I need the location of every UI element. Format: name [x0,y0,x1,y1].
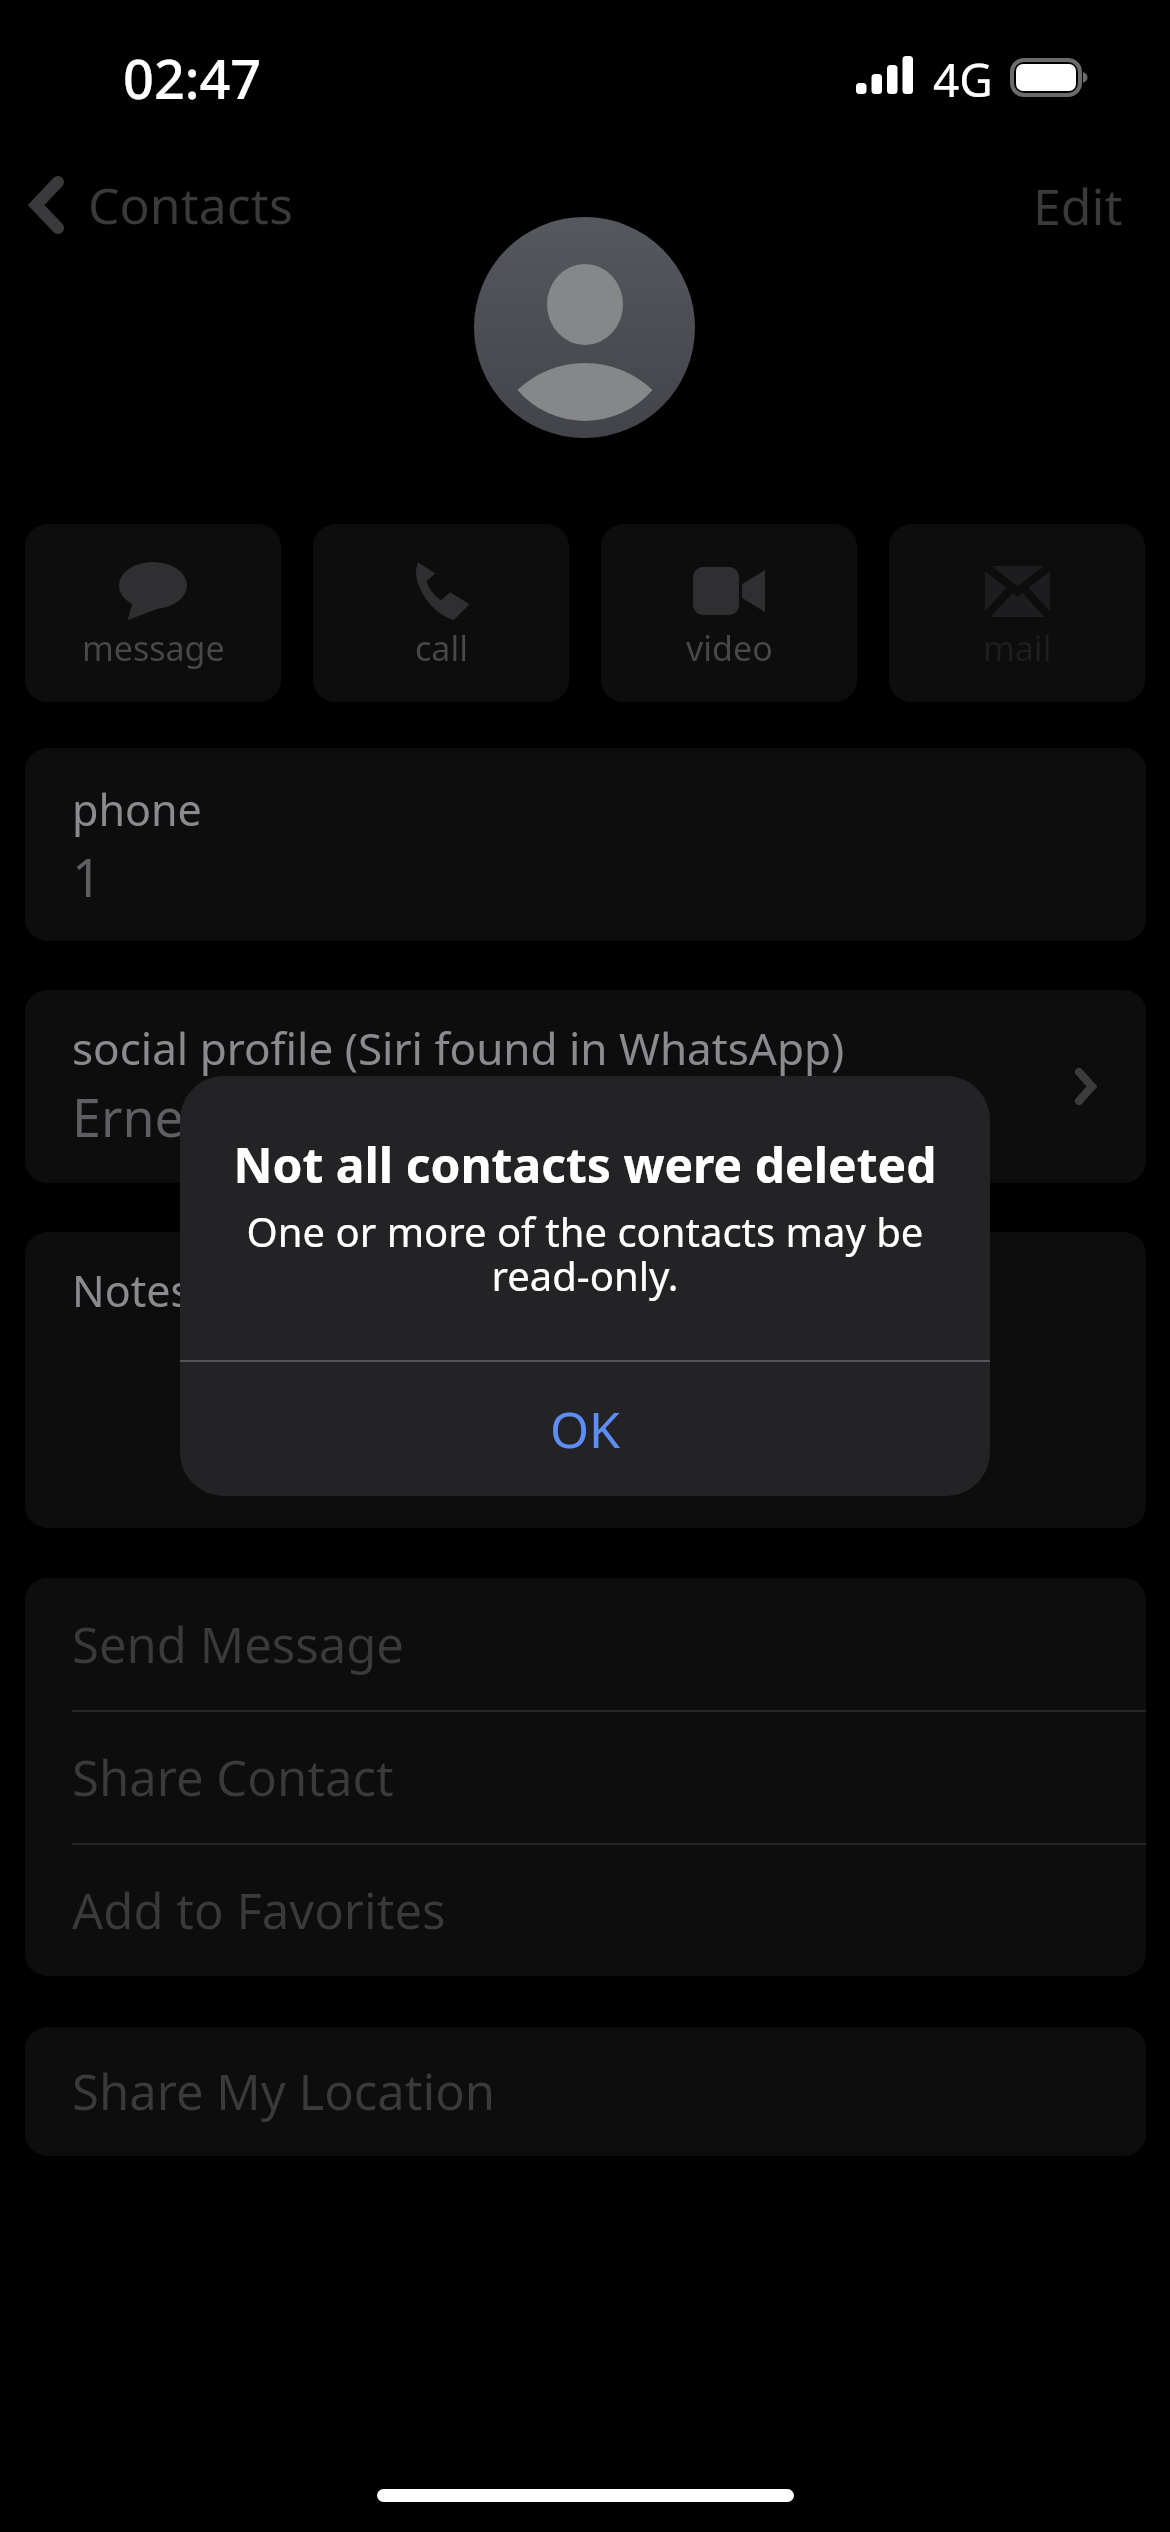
button[interactable]: Share My Location [25,2027,1146,2156]
button[interactable]: Share Contact [25,1712,1146,1843]
staticText: 02:47 [123,41,262,115]
staticText: Contacts [88,171,293,239]
button[interactable]: Notes [25,1232,1146,1528]
staticText: Edit [1033,172,1123,240]
button[interactable]: message [25,524,281,702]
button[interactable]: Add to Favorites [25,1845,1146,1976]
button[interactable]: video [601,524,857,702]
staticText: mail [983,625,1052,671]
staticText: Share My Location [72,2058,496,2125]
staticText: Ernest [72,1081,228,1152]
staticText: message [82,625,225,671]
staticText: call [415,625,468,671]
button[interactable]: OK [180,1362,990,1496]
staticText: Share Contact [72,1744,394,1811]
staticText: Not all contacts were deleted [180,1132,990,1197]
staticText: video [686,625,773,671]
staticText: social profile (Siri found in WhatsApp) [72,1018,845,1078]
button[interactable]: phone [25,748,1146,941]
staticText: OK [550,1395,620,1463]
staticText: 1 [72,841,102,912]
staticText: Add to Favorites [72,1877,446,1944]
button[interactable]: call [313,524,569,702]
button[interactable]: mail [889,524,1145,702]
staticText: One or more of the contacts may be read-… [180,1204,990,1302]
button[interactable]: Send Message [25,1578,1146,1710]
button[interactable]: Edit [1011,160,1145,252]
button[interactable]: social profile (Siri found in WhatsApp) [25,990,1146,1183]
staticText: phone [72,780,202,839]
staticText: 4G [933,48,993,111]
staticText: Send Message [72,1611,404,1678]
staticText: Notes [72,1261,192,1320]
button[interactable]: Back to Contacts [16,159,307,251]
other: Open social profile [1075,1068,1096,1105]
